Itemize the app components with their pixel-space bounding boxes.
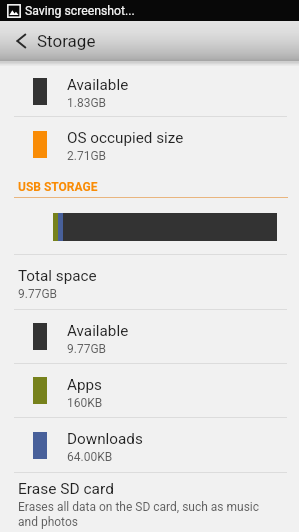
button[interactable]: Back [0, 21, 299, 61]
button[interactable]: Available [0, 66, 299, 116]
staticText: Apps [67, 376, 102, 394]
staticText: 64.00KB [67, 450, 113, 464]
staticText: 9.77GB [67, 342, 107, 356]
button[interactable]: Total space [0, 255, 299, 309]
staticText: Erase SD card [18, 480, 114, 498]
staticText: 160KB [67, 396, 103, 410]
staticText: Available [67, 76, 129, 94]
button[interactable]: Available [0, 310, 299, 363]
staticText: Erases all data on the SD card, such as … [18, 500, 273, 529]
button[interactable]: OS occupied size [0, 117, 299, 171]
staticText: Available [67, 322, 129, 340]
other: Screenshot [7, 4, 21, 18]
button[interactable]: Downloads [0, 418, 299, 472]
other: Back [16, 33, 27, 49]
staticText: OS occupied size [67, 129, 184, 147]
staticText: 9.77GB [18, 287, 58, 301]
staticText: 1.83GB [67, 96, 107, 110]
staticText: Downloads [67, 430, 143, 448]
staticText: 2.71GB [67, 149, 107, 163]
button[interactable]: Apps [0, 364, 299, 417]
staticText: Saving screenshot... [25, 4, 135, 18]
button[interactable]: Erase SD card [0, 473, 299, 529]
staticText: Total space [18, 267, 97, 285]
staticText: USB STORAGE [18, 180, 98, 194]
staticText: Storage [37, 31, 96, 51]
